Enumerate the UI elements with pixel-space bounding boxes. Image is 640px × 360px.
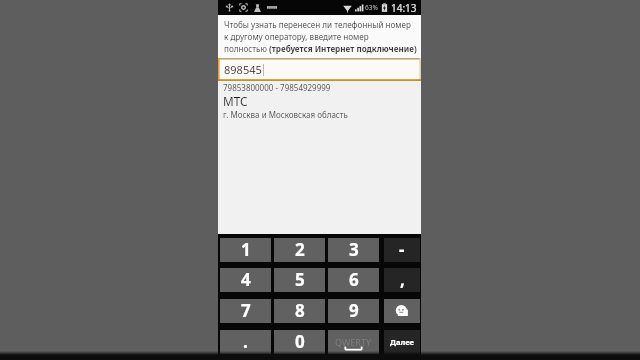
staticText: 898545 xyxy=(224,62,262,77)
other: Space xyxy=(328,330,379,354)
button[interactable]: 2 xyxy=(274,238,325,262)
staticText: 63% xyxy=(365,3,378,12)
staticText: Чтобы узнать перенесен ли телефонный ном… xyxy=(224,19,417,54)
button[interactable]: Space xyxy=(328,330,379,354)
staticText: 0 xyxy=(295,330,305,353)
staticText: . xyxy=(243,330,248,353)
other: Emoji xyxy=(384,299,420,323)
button[interactable]: 7 xyxy=(220,299,271,323)
staticText: МТС xyxy=(223,93,248,109)
staticText: QWERTY xyxy=(335,336,372,348)
staticText: 7 xyxy=(241,299,251,322)
button[interactable]: Далее xyxy=(384,330,420,354)
staticText: , xyxy=(400,268,405,291)
button[interactable]: . xyxy=(220,330,271,354)
button[interactable]: 5 xyxy=(274,268,325,292)
staticText: 9 xyxy=(349,299,359,322)
staticText: 3 xyxy=(349,238,359,261)
button[interactable]: 79853800000 - 79854929999 xyxy=(223,82,421,234)
button[interactable]: 0 xyxy=(274,330,325,354)
staticText: Далее xyxy=(390,337,415,347)
staticText: 6 xyxy=(349,268,359,291)
button[interactable]: 1 xyxy=(220,238,271,262)
staticText: 1 xyxy=(241,238,251,261)
button[interactable]: 3 xyxy=(328,238,379,262)
staticText: 79853800000 - 79854929999 xyxy=(223,82,331,93)
staticText: 14:13 xyxy=(391,1,417,15)
staticText: 2 xyxy=(295,238,305,261)
button[interactable]: 898545 xyxy=(218,58,421,81)
staticText: - xyxy=(399,238,405,261)
button[interactable]: - xyxy=(384,238,420,262)
button[interactable]: 6 xyxy=(328,268,379,292)
staticText: 5 xyxy=(295,268,305,291)
staticText: 8 xyxy=(295,299,305,322)
button[interactable]: 4 xyxy=(220,268,271,292)
button[interactable]: 8 xyxy=(274,299,325,323)
button[interactable]: Emoji xyxy=(384,299,420,323)
staticText: 4 xyxy=(241,268,251,291)
staticText: г. Москва и Московская область xyxy=(223,109,348,120)
button[interactable]: , xyxy=(384,268,420,292)
button[interactable]: 9 xyxy=(328,299,379,323)
